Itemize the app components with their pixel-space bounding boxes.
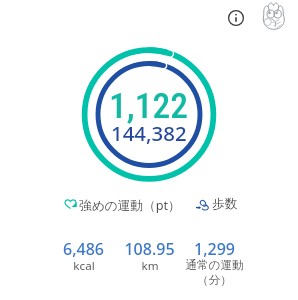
staticText: 6,486 xyxy=(63,238,104,260)
button[interactable]: 強めの運動（pt） xyxy=(64,196,181,213)
button[interactable]: 108.95 xyxy=(117,238,182,276)
staticText: kcal xyxy=(73,258,95,274)
staticText: 1,299 xyxy=(194,238,235,260)
staticText: 強めの運動（pt） xyxy=(79,196,181,213)
staticText: 通常の運動 （分） xyxy=(185,258,244,287)
button[interactable]: Information xyxy=(223,5,248,30)
staticText: km xyxy=(141,258,159,274)
staticText: 1,122 xyxy=(109,85,188,127)
staticText: 歩数 xyxy=(212,196,238,212)
staticText: 108.95 xyxy=(124,238,175,260)
button[interactable]: Character profile xyxy=(258,1,288,31)
button[interactable]: 1,299 xyxy=(182,238,247,289)
button[interactable]: 歩数 xyxy=(196,196,238,212)
staticText: 144,382 xyxy=(111,119,187,147)
button[interactable]: 6,486 xyxy=(51,238,116,276)
